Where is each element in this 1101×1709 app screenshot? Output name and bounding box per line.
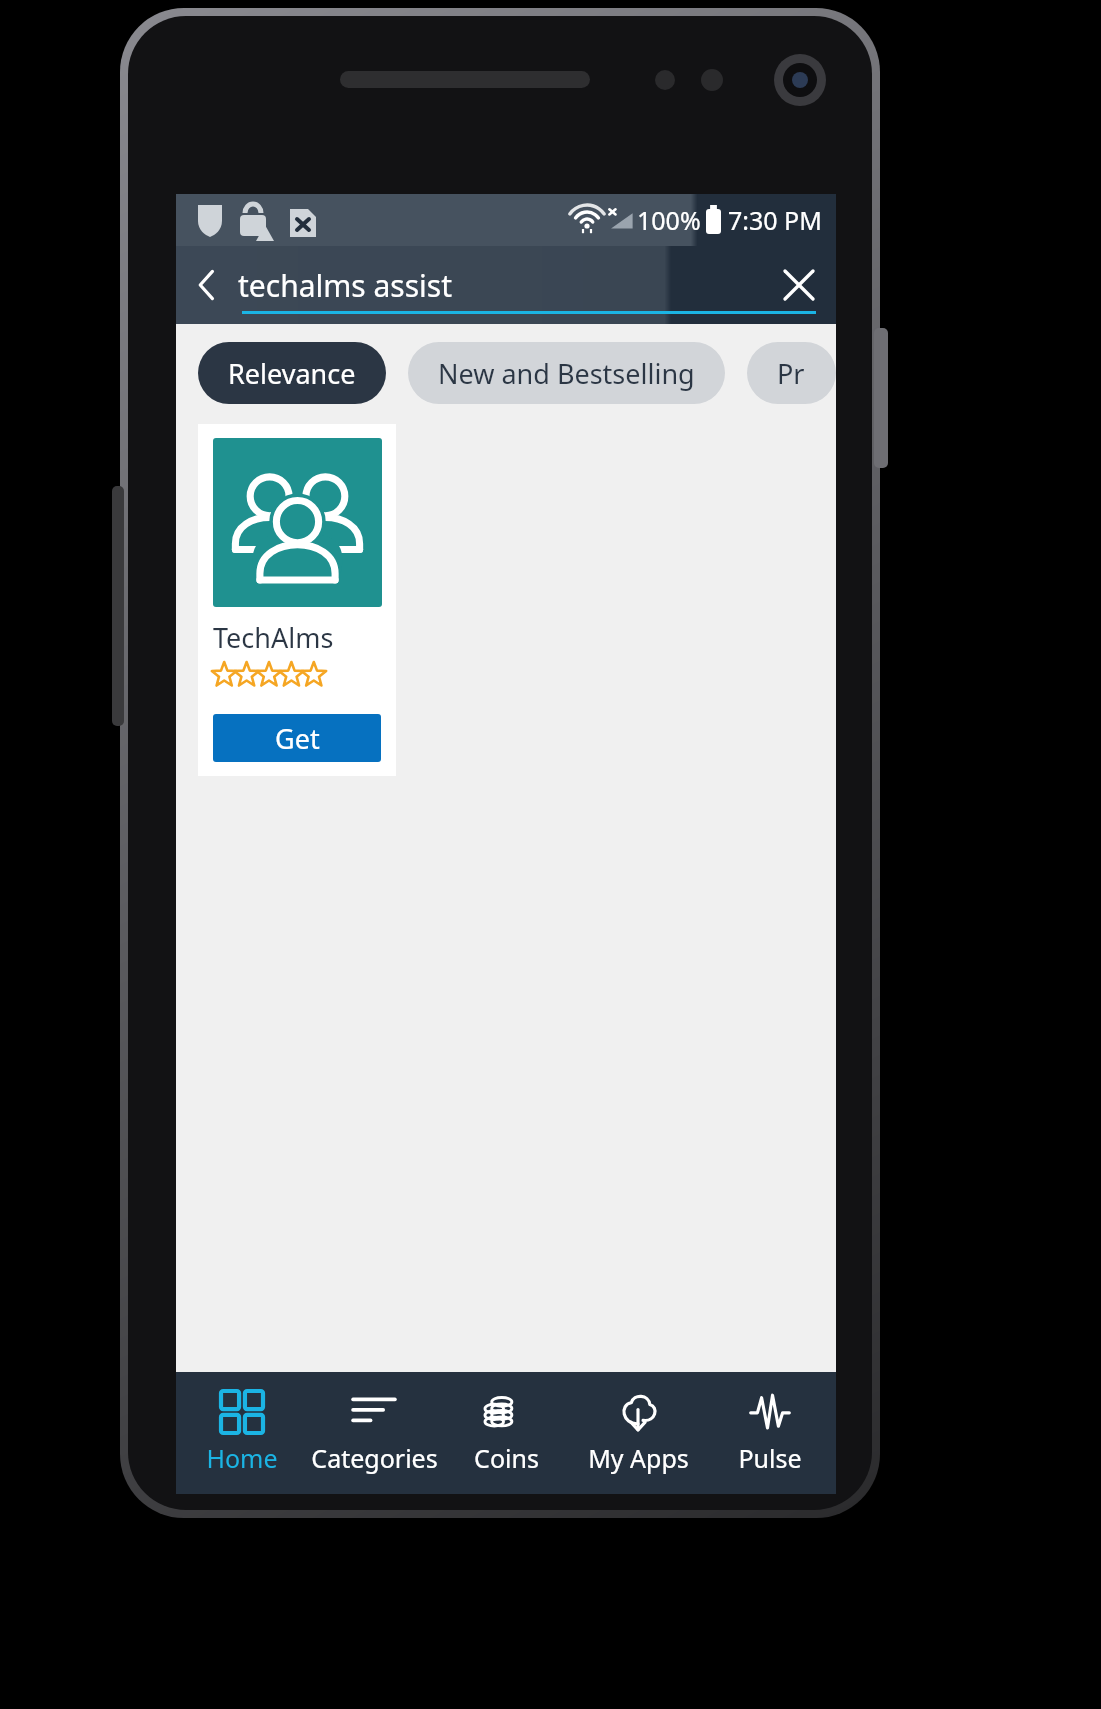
button[interactable]: Home: [176, 1372, 308, 1494]
staticText: TechAlms Assist: [213, 619, 396, 656]
staticText: 100%: [637, 203, 701, 237]
staticText: Home: [206, 1441, 278, 1475]
button[interactable]: Pulse: [704, 1372, 836, 1494]
button[interactable]: Back: [176, 246, 238, 324]
staticText: Coins: [474, 1441, 539, 1475]
button[interactable]: Coins: [440, 1372, 572, 1494]
staticText: Get: [275, 720, 320, 757]
button[interactable]: Get: [213, 714, 381, 762]
button[interactable]: My Apps: [572, 1372, 704, 1494]
staticText: Categories: [311, 1441, 438, 1475]
button[interactable]: Clear search: [762, 246, 836, 324]
staticText: Relevance: [228, 355, 356, 392]
staticText: Price: Low to High: [777, 355, 806, 392]
staticText: Pulse: [738, 1441, 802, 1475]
staticText: New and Bestselling: [438, 355, 695, 392]
button[interactable]: Relevance: [198, 342, 386, 404]
button[interactable]: New and Bestselling: [408, 342, 725, 404]
staticText: techalms assist: [238, 265, 762, 306]
button[interactable]: TechAlms Assist: [198, 424, 396, 776]
staticText: My Apps: [588, 1441, 689, 1475]
button[interactable]: Categories: [308, 1372, 440, 1494]
staticText: 7:30 PM: [728, 203, 822, 237]
button[interactable]: Price: Low to High: [747, 342, 836, 404]
